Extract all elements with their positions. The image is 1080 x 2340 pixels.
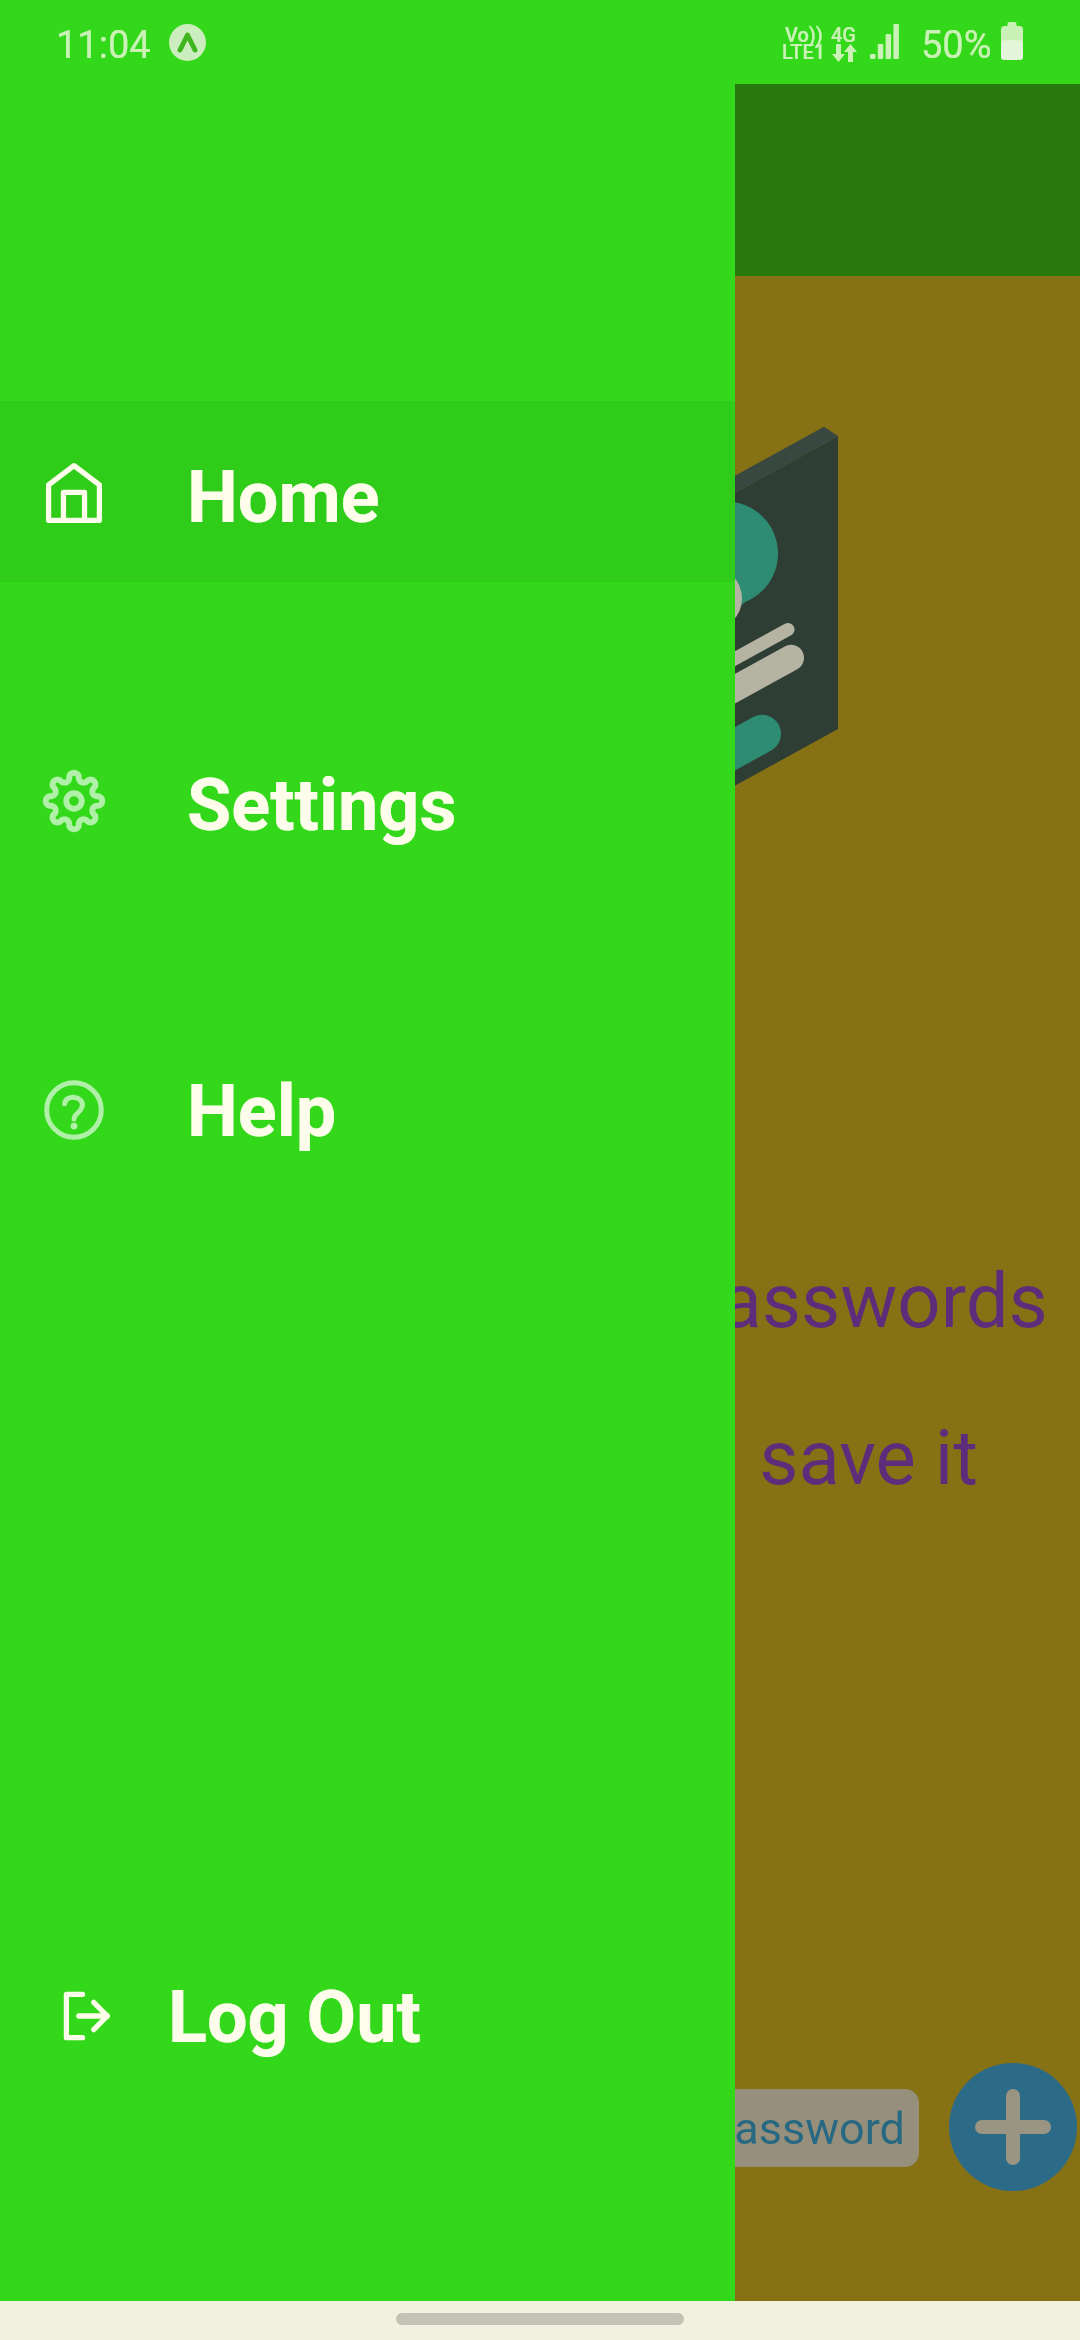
staticText: LTE1 xyxy=(782,40,826,63)
button[interactable]: Settings xyxy=(0,712,735,892)
button[interactable]: Help xyxy=(0,1020,735,1200)
staticText: Click on + icon and save it xyxy=(0,1413,1080,1502)
staticText: Home xyxy=(187,455,380,539)
button[interactable]: Home xyxy=(0,401,735,582)
staticText: 11:04 xyxy=(56,23,151,68)
staticText: Log Out xyxy=(168,1975,421,2059)
staticText: Help xyxy=(187,1069,337,1153)
staticText: 50% xyxy=(921,23,992,68)
button[interactable]: Log Out xyxy=(0,1927,735,2107)
staticText: Vo)) xyxy=(785,23,823,46)
button[interactable]: Add password xyxy=(949,2063,1077,2191)
staticText: 4G xyxy=(831,23,856,46)
staticText: Settings xyxy=(187,763,457,847)
staticText: Add New Password xyxy=(514,2102,905,2155)
staticText: Oops! You have no passwords xyxy=(0,1256,1080,1345)
button[interactable]: Add New Password xyxy=(500,2089,919,2167)
